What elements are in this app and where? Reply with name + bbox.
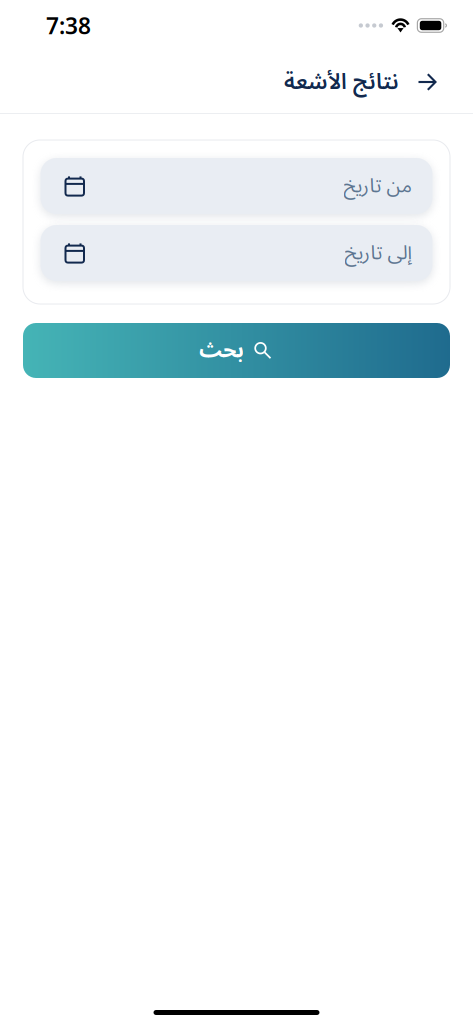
button[interactable]: بحث <box>23 323 450 378</box>
button[interactable]: Back <box>418 66 436 98</box>
staticText: نتائج الأشعة <box>283 59 398 105</box>
staticText: بحث <box>198 328 243 373</box>
staticText: من تاريخ <box>343 165 412 207</box>
button[interactable]: إلى تاريخ <box>40 225 432 281</box>
staticText: إلى تاريخ <box>344 232 412 274</box>
staticText: 7:38 <box>46 10 91 40</box>
button[interactable]: من تاريخ <box>40 158 432 214</box>
